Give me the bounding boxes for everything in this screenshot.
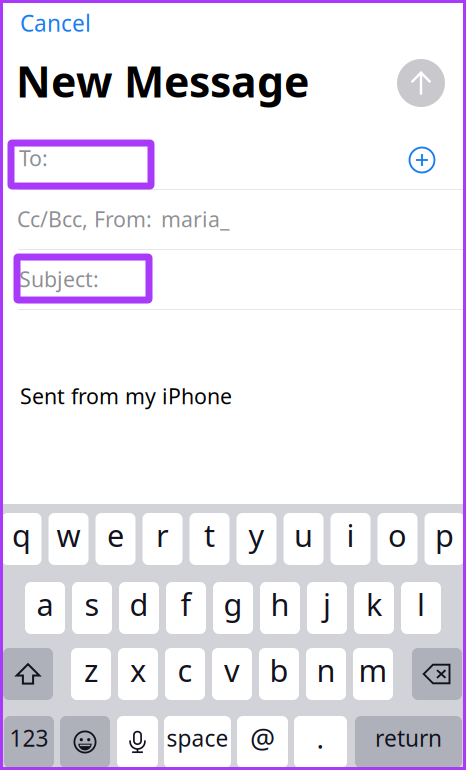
button[interactable]: x: [118, 648, 158, 700]
button[interactable]: c: [165, 648, 205, 700]
staticText: 123: [9, 723, 48, 753]
button[interactable]: @: [237, 716, 288, 768]
staticText: return: [375, 723, 442, 753]
button[interactable]: g: [213, 582, 253, 634]
staticText: f: [180, 584, 191, 624]
staticText: maria_: [161, 205, 229, 233]
staticText: p: [435, 515, 454, 555]
staticText: Cc/Bcc, From:: [17, 205, 152, 233]
staticText: c: [177, 650, 192, 690]
button[interactable]: f: [166, 582, 206, 634]
button[interactable]: r: [142, 513, 182, 565]
staticText: @: [250, 719, 275, 757]
button[interactable]: return: [355, 716, 462, 768]
button[interactable]: d: [119, 582, 159, 634]
staticText: n: [316, 650, 335, 690]
button[interactable]: l: [401, 582, 441, 634]
staticText: i: [346, 515, 354, 555]
staticText: Sent from my iPhone: [20, 382, 232, 410]
button[interactable]: s: [72, 582, 112, 634]
button[interactable]: Dictate: [117, 716, 158, 768]
button[interactable]: y: [236, 513, 276, 565]
button[interactable]: Send: [397, 59, 445, 107]
button[interactable]: q: [1, 513, 41, 565]
button[interactable]: space: [164, 716, 231, 768]
button[interactable]: b: [259, 648, 299, 700]
button[interactable]: o: [377, 513, 417, 565]
staticText: z: [84, 650, 98, 690]
staticText: space: [166, 723, 228, 753]
button[interactable]: n: [306, 648, 346, 700]
staticText: o: [388, 515, 407, 555]
staticText: y: [248, 515, 264, 555]
staticText: u: [294, 515, 313, 555]
button[interactable]: e: [95, 513, 135, 565]
staticText: b: [269, 650, 288, 690]
button[interactable]: .: [294, 716, 347, 768]
button[interactable]: i: [330, 513, 370, 565]
staticText: h: [270, 584, 289, 624]
staticText: v: [224, 650, 240, 690]
button[interactable]: Delete: [412, 648, 462, 700]
button[interactable]: 123: [4, 716, 54, 768]
staticText: d: [129, 584, 148, 624]
staticText: .: [316, 719, 324, 757]
staticText: New Message: [16, 53, 309, 109]
staticText: j: [323, 584, 331, 624]
staticText: a: [36, 584, 53, 624]
button[interactable]: Emoji: [60, 716, 110, 768]
staticText: q: [12, 515, 31, 555]
button[interactable]: v: [212, 648, 252, 700]
button[interactable]: w: [48, 513, 88, 565]
staticText: s: [84, 584, 99, 624]
button[interactable]: z: [71, 648, 111, 700]
staticText: w: [56, 515, 80, 555]
staticText: k: [366, 584, 382, 624]
button[interactable]: p: [424, 513, 464, 565]
button[interactable]: u: [283, 513, 323, 565]
staticText: m: [358, 650, 387, 690]
staticText: Cancel: [20, 8, 91, 38]
staticText: x: [130, 650, 146, 690]
button[interactable]: h: [260, 582, 300, 634]
button[interactable]: Add recipient: [400, 138, 444, 182]
staticText: e: [107, 515, 124, 555]
button[interactable]: j: [307, 582, 347, 634]
button[interactable]: Shift: [3, 648, 53, 700]
button[interactable]: a: [25, 582, 65, 634]
staticText: t: [204, 515, 215, 555]
staticText: l: [417, 584, 425, 624]
button[interactable]: k: [354, 582, 394, 634]
staticText: g: [223, 584, 242, 624]
button[interactable]: m: [353, 648, 393, 700]
button[interactable]: Cancel: [20, 6, 106, 40]
button[interactable]: t: [189, 513, 229, 565]
staticText: To:: [19, 144, 48, 172]
staticText: Subject:: [19, 265, 99, 293]
staticText: r: [156, 515, 169, 555]
